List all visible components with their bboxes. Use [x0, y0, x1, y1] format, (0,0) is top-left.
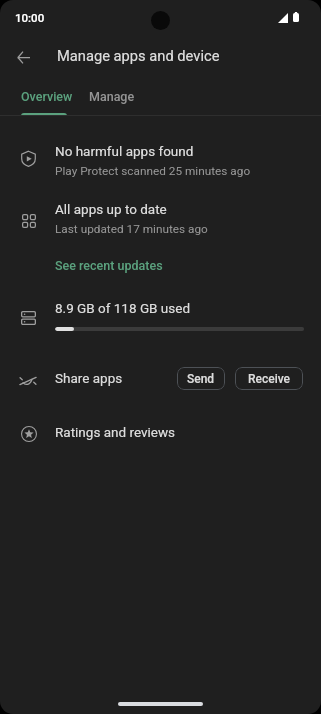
staticText: Share apps: [55, 370, 123, 386]
button[interactable]: No harmful apps found: [0, 136, 321, 184]
staticText: Ratings and reviews: [55, 424, 176, 440]
button[interactable]: 8.9 GB of 118 GB used: [0, 292, 321, 338]
button[interactable]: All apps up to date: [0, 196, 321, 280]
button[interactable]: Manage: [79, 83, 145, 110]
staticText: 8.9 GB of 118 GB used: [55, 300, 191, 316]
staticText: Manage: [89, 89, 135, 104]
button[interactable]: Overview: [11, 83, 83, 110]
staticText: No harmful apps found: [55, 143, 194, 159]
button[interactable]: Receive: [235, 367, 303, 390]
button[interactable]: See recent updates: [55, 258, 163, 273]
staticText: Last updated 17 minutes ago: [55, 222, 208, 236]
staticText: Overview: [21, 89, 73, 104]
staticText: 10:00: [15, 11, 45, 24]
button[interactable]: Back: [8, 42, 38, 72]
staticText: Send: [187, 372, 215, 386]
staticText: Play Protect scanned 25 minutes ago: [55, 164, 251, 178]
staticText: All apps up to date: [55, 201, 167, 217]
staticText: Receive: [248, 372, 291, 386]
staticText: Manage apps and device: [57, 47, 220, 64]
button[interactable]: Send: [177, 367, 225, 390]
staticText: See recent updates: [55, 258, 163, 273]
button[interactable]: Ratings and reviews: [0, 410, 321, 454]
